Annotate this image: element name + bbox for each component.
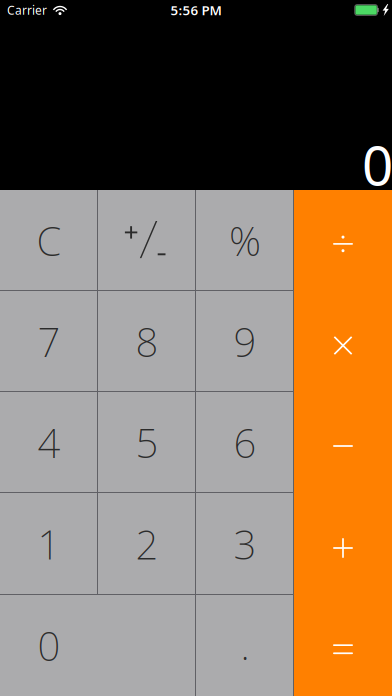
staticText: 0 [362,128,392,200]
button[interactable]: 6 [196,392,294,493]
button[interactable]: Clear [0,190,98,291]
staticText: 1 [37,517,60,570]
button[interactable]: 0 [0,595,196,696]
button[interactable]: 5 [98,392,196,493]
staticText: Carrier [7,2,47,18]
button[interactable]: Multiply [294,291,392,392]
staticText: 9 [233,315,256,368]
button[interactable]: Decimal point [196,595,294,696]
button[interactable]: Plus [294,493,392,595]
button[interactable]: Minus [294,392,392,493]
staticText: C [36,214,61,267]
staticText: 2 [135,517,158,570]
staticText: 6 [233,416,256,469]
button[interactable]: 2 [98,493,196,595]
button[interactable]: 7 [0,291,98,392]
button[interactable]: 4 [0,392,98,493]
staticText: 8 [135,315,158,368]
button[interactable]: Divide [294,190,392,291]
staticText: 0 [37,619,60,672]
staticText: % [229,214,261,267]
button[interactable]: 9 [196,291,294,392]
staticText: 5:56 PM [170,1,221,19]
button[interactable]: 8 [98,291,196,392]
button[interactable]: Percent [196,190,294,291]
button[interactable]: Plus minus [98,190,196,291]
staticText: 3 [233,517,256,570]
staticText: 5 [135,416,158,469]
button[interactable]: 3 [196,493,294,595]
button[interactable]: 1 [0,493,98,595]
staticText: 4 [37,416,60,469]
button[interactable]: Equals [294,595,392,696]
staticText: 7 [37,315,60,368]
staticText: . [240,618,249,671]
